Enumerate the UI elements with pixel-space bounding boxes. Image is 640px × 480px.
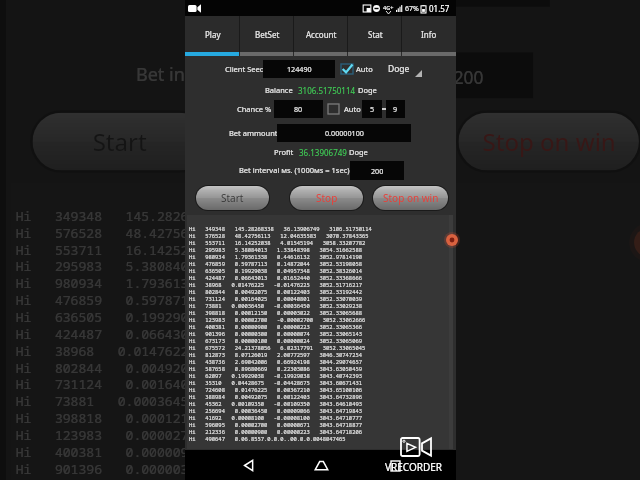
button[interactable]: Auto client seed checkbox <box>341 64 353 74</box>
staticText: Hi 587658 0.89680669 0.22303086 3043.630… <box>189 365 362 372</box>
button[interactable]: Recorder controls <box>444 232 460 248</box>
button[interactable]: Stop <box>290 186 363 210</box>
staticText: Play <box>205 29 221 40</box>
staticText: 80 <box>294 104 303 114</box>
staticText: Auto <box>356 64 373 74</box>
button[interactable]: Start <box>196 186 269 210</box>
staticText: Hi 398818 0.00012150 0.00003022 3052.330… <box>16 409 432 425</box>
staticText: Hi 35310 0.04428675 -0.04428675 3043.606… <box>189 379 362 386</box>
staticText: Hi 41692 0.00008100 -0.00008100 3043.647… <box>189 414 362 421</box>
staticText: Hi 901396 0.00000300 0.00000074 3052.330… <box>16 459 432 476</box>
button[interactable]: 124490 <box>263 60 335 78</box>
staticText: Account <box>306 29 337 40</box>
staticText: Hi 400381 0.00000900 0.00000223 3052.330… <box>16 442 432 459</box>
staticText: Hi 123983 0.00002700 -0.00002700 3052.33… <box>16 425 442 442</box>
staticText: Client Seed: <box>225 64 267 74</box>
staticText: Hi 388984 0.00492075 0.00122403 3043.647… <box>189 393 362 400</box>
staticText: Profit <box>274 147 296 157</box>
staticText: Hi 802844 0.00492075 0.00122403 3052.331… <box>189 288 362 295</box>
button[interactable]: 0.00000100 <box>277 124 411 142</box>
button[interactable]: Home <box>306 450 336 480</box>
staticText: Hi 295983 5.38084013 1.33848398 3054.316… <box>16 257 432 274</box>
staticText: Stat <box>368 29 383 40</box>
button[interactable]: Recent apps <box>378 450 408 480</box>
staticText: Hi 724608 0.01476225 0.00367210 3043.651… <box>189 386 362 393</box>
staticText: 200 <box>371 166 384 176</box>
button[interactable]: Play <box>185 16 240 52</box>
staticText: 3106.51750114 <box>298 85 356 96</box>
button[interactable]: Stat <box>348 16 402 52</box>
staticText: Start <box>93 125 148 158</box>
staticText: Hi 596095 0.00002700 0.00000671 3043.647… <box>189 421 362 428</box>
staticText: Hi 212336 0.00000900 0.00000223 3043.647… <box>189 428 362 435</box>
staticText: 36.13906749 <box>280 19 396 45</box>
staticText: Hi 812873 8.07126019 2.00772597 3046.307… <box>189 351 362 358</box>
staticText: Chance % <box>237 104 272 114</box>
staticText: Hi 731124 0.00164025 0.00040801 3052.330… <box>16 375 432 392</box>
button[interactable]: 200 <box>403 52 533 98</box>
staticText: Hi 673173 0.00000100 0.00000024 3052.330… <box>189 337 362 344</box>
button[interactable]: Account <box>294 16 348 52</box>
staticText: Info <box>421 29 437 40</box>
staticText: Auto <box>344 104 361 114</box>
button[interactable]: BetSet <box>240 16 294 52</box>
button[interactable]: 200 <box>350 161 404 180</box>
staticText: 01.57 <box>429 3 450 14</box>
staticText: Hi 490647 0.06.8557.0.0.0..00.0.0.004804… <box>189 435 346 442</box>
staticText: Hi 802844 0.00492075 0.00122403 3052.331… <box>16 358 432 375</box>
button[interactable]: Stop on win <box>458 113 639 170</box>
staticText: Bet ammount <box>229 128 278 138</box>
staticText: Doge <box>396 19 446 43</box>
button[interactable]: Auto chance range checkbox <box>328 104 339 114</box>
button[interactable]: 9 <box>386 100 405 118</box>
staticText: Hi 123983 0.00002700 -0.00002700 3052.33… <box>189 316 366 323</box>
button[interactable]: 80 <box>274 100 323 118</box>
staticText: 200 <box>454 64 485 89</box>
staticText: Hi 295983 5.38084013 1.33848398 3054.316… <box>189 246 362 253</box>
staticText: Hi 673173 0.00000100 0.00000024 3052.330… <box>16 476 432 480</box>
button[interactable]: Stop on win <box>373 186 448 210</box>
staticText: Start <box>221 191 244 205</box>
button[interactable]: Start <box>32 113 208 170</box>
staticText: 0.00000100 <box>325 128 364 138</box>
staticText: Hi 38968 0.01476225 -0.01476225 3052.517… <box>16 341 432 358</box>
staticText: Hi 349348 145.28268338 36.13906749 3106.… <box>16 206 456 223</box>
staticText: Hi 424487 0.06643013 0.01652440 3052.333… <box>189 274 362 281</box>
button[interactable]: Stop <box>259 113 434 170</box>
staticText: Hi 636505 0.19929038 0.04957348 3052.383… <box>16 308 432 324</box>
staticText: Stop <box>321 125 374 158</box>
staticText: Hi 400381 0.00000900 0.00000223 3052.330… <box>189 323 362 330</box>
staticText: 124490 <box>287 64 312 74</box>
staticText: Stop on win <box>383 191 439 205</box>
staticText: Hi 38968 0.01476225 -0.01476225 3052.517… <box>189 281 362 288</box>
staticText: Hi 438736 2.69042006 0.66924198 3044.290… <box>189 358 362 365</box>
button[interactable]: Back <box>233 450 263 480</box>
staticText: Bet interval мs. (1000мs = 1sec) <box>136 62 403 86</box>
staticText: Hi 476859 0.59787113 0.14872044 3052.531… <box>189 260 362 267</box>
staticText: Hi 73881 0.00036450 -0.00036450 3052.330… <box>189 302 362 309</box>
staticText: VRECORDER <box>385 460 443 474</box>
staticText: Hi 675572 24.21378056 6.02317791 3052.33… <box>189 344 366 351</box>
staticText: Hi 349348 145.28268338 36.13906749 3106.… <box>189 225 372 232</box>
staticText: 36.13906749 <box>299 147 347 158</box>
button[interactable]: Info <box>402 16 456 52</box>
staticText: 4G+ <box>383 4 394 11</box>
staticText: Hi 398818 0.00012150 0.00003022 3052.330… <box>189 309 362 316</box>
staticText: Hi 45362 0.00109350 -0.00109350 3043.646… <box>189 400 362 407</box>
staticText: Hi 424487 0.06643013 0.01652440 3052.333… <box>16 324 432 341</box>
button[interactable]: Currency selector Doge <box>386 60 422 78</box>
staticText: Hi 901396 0.00000300 0.00000074 3052.330… <box>189 330 362 337</box>
button[interactable]: 5 <box>362 100 382 118</box>
staticText: Hi 553711 16.14252038 4.01545194 3058.33… <box>189 239 366 246</box>
staticText: Hi 73881 0.00036450 -0.00036450 3052.330… <box>16 392 432 409</box>
staticText: BetSet <box>255 29 280 40</box>
staticText: Bet interval мs. (1000мs = 1sec) <box>239 165 350 175</box>
staticText: 9 <box>393 104 398 114</box>
staticText: Doge <box>347 147 368 157</box>
staticText: Hi 576528 48.42756113 12.04635583 3070.3… <box>189 232 369 239</box>
staticText: Hi 980934 1.79361338 0.44616132 3052.978… <box>16 274 432 291</box>
staticText: Hi 476859 0.59787113 0.14872044 3052.531… <box>16 291 432 307</box>
button[interactable]: Recorder controls <box>629 223 640 262</box>
button[interactable]: 0.00000100 <box>227 0 550 7</box>
staticText: 67% <box>405 4 419 14</box>
